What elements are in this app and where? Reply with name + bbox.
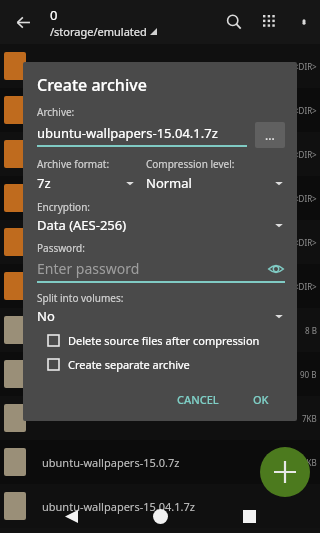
staticText: Archive: <box>37 105 75 119</box>
button[interactable]: Back <box>53 499 89 533</box>
staticText: 4KB <box>302 457 317 468</box>
staticText: 7KB <box>302 413 317 424</box>
button[interactable]: Normal <box>146 174 285 192</box>
staticText: <DIR> <box>294 149 317 160</box>
staticText: Enter password <box>37 259 140 278</box>
staticText: CANCEL <box>177 392 219 407</box>
button[interactable]: Enter password <box>37 259 285 278</box>
button[interactable]: No <box>37 307 285 325</box>
staticText: Normal <box>146 174 192 192</box>
button[interactable]: CANCEL <box>167 386 229 413</box>
staticText: <DIR> <box>294 105 317 116</box>
button[interactable]: Browse <box>255 122 285 148</box>
other: Show password <box>267 260 285 278</box>
staticText: ... <box>265 127 275 143</box>
staticText: OK <box>253 392 269 407</box>
button[interactable]: Recents <box>231 499 267 533</box>
button[interactable]: Add <box>260 447 310 497</box>
staticText: Password: <box>37 241 85 255</box>
staticText: 7z <box>37 174 51 192</box>
staticText: Archive format: <box>37 157 110 171</box>
staticText: Delete source files after compression <box>68 333 260 348</box>
button[interactable]: Search <box>216 4 252 40</box>
staticText: Encryption: <box>37 200 91 214</box>
staticText: <DIR> <box>294 61 317 72</box>
staticText: 8 B <box>305 325 317 336</box>
staticText: <DIR> <box>294 237 317 248</box>
button[interactable]: Delete source files after compression <box>37 333 285 348</box>
staticText: Create archive <box>37 74 147 96</box>
button[interactable]: More options <box>288 6 320 38</box>
staticText: Split into volumes: <box>37 291 124 305</box>
staticText: ubuntu-wallpapers-15.0.7z <box>42 455 180 470</box>
staticText: /storage/emulated <box>50 24 147 39</box>
button[interactable]: Data (AES-256) <box>37 216 285 234</box>
staticText: <DIR> <box>294 193 317 204</box>
staticText: ubuntu-wallpapers-15.04.1.7z <box>42 499 195 514</box>
staticText: No <box>37 307 55 325</box>
button[interactable]: 7z <box>37 174 146 192</box>
staticText: ubuntu-wallpapers-15.04.1.7z <box>37 124 218 142</box>
button[interactable]: Home <box>142 499 178 533</box>
button[interactable]: Create separate archive <box>37 357 285 372</box>
staticText: 90 B <box>300 369 317 380</box>
button[interactable]: View mode <box>252 4 288 40</box>
staticText: <DIR> <box>294 281 317 292</box>
staticText: Create separate archive <box>68 357 190 372</box>
button[interactable]: OK <box>241 386 281 413</box>
staticText: 0 <box>50 6 58 24</box>
staticText: Compression level: <box>146 157 235 171</box>
staticText: Data (AES-256) <box>37 216 127 234</box>
button[interactable]: Back <box>6 5 40 39</box>
